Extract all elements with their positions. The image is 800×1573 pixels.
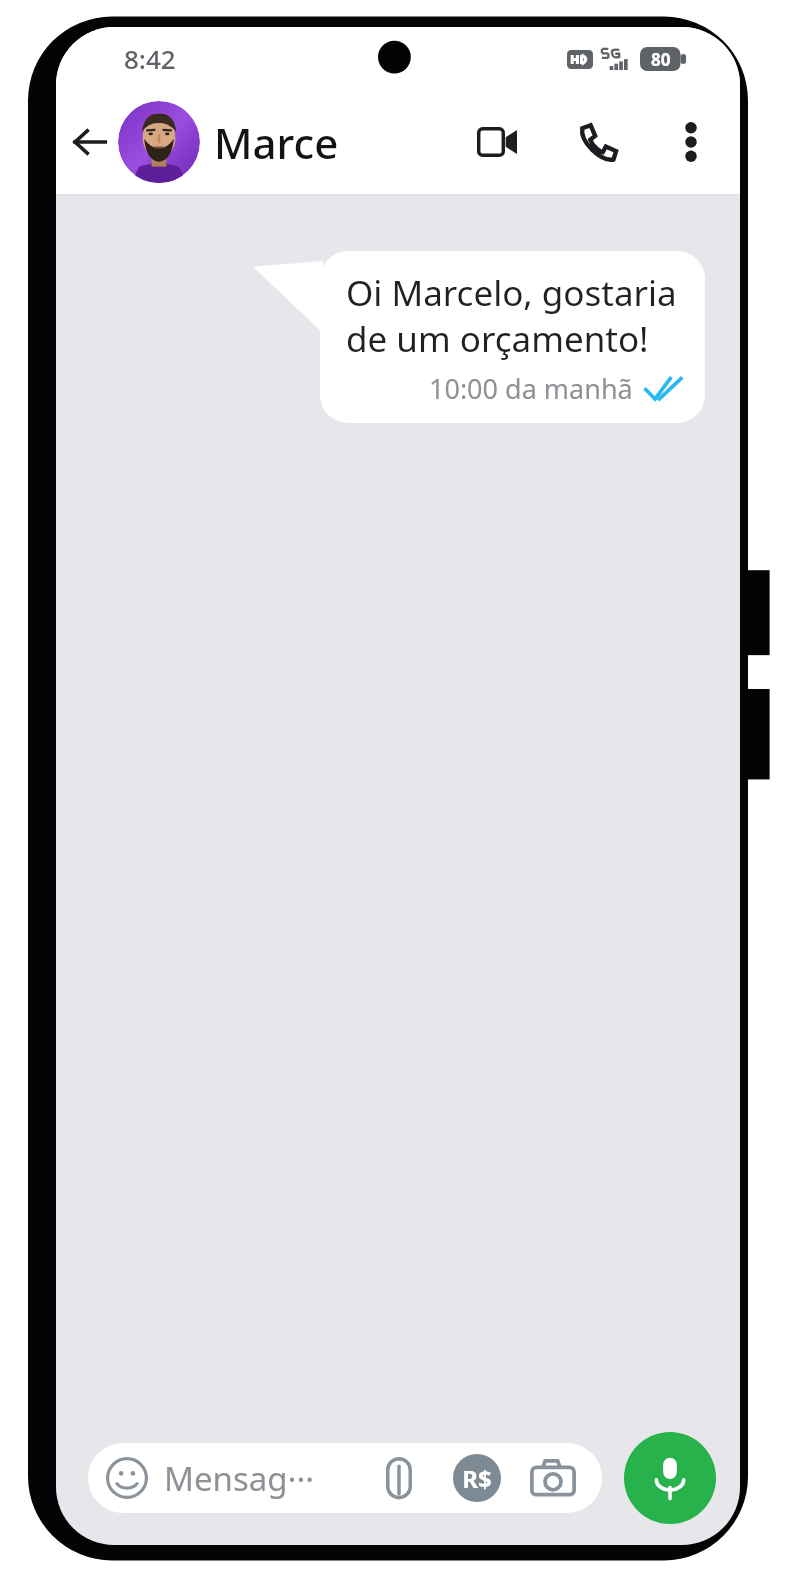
button[interactable]: Video call: [466, 111, 528, 173]
staticText: Mensag···: [164, 1456, 372, 1501]
button[interactable]: Camera: [526, 1451, 580, 1505]
staticText: Marcelo Inez: [214, 114, 340, 171]
button[interactable]: Call: [568, 111, 630, 173]
button[interactable]: Voice message: [624, 1432, 716, 1524]
staticText: Oi Marcelo, gostaria de um orçamento!: [346, 269, 681, 362]
button[interactable]: Send money: [450, 1451, 504, 1505]
button[interactable]: Mensag···: [88, 1443, 602, 1513]
staticText: 10:00 da manhã: [429, 370, 633, 407]
button[interactable]: Contact photo: [118, 101, 200, 183]
button[interactable]: Attach: [372, 1451, 426, 1505]
staticText: 80: [651, 48, 671, 71]
button[interactable]: More options: [660, 111, 722, 173]
staticText: 8:42: [124, 41, 176, 76]
staticText: R$: [462, 1462, 492, 1495]
button[interactable]: Back: [62, 114, 118, 170]
button[interactable]: Oi Marcelo, gostaria de um orçamento!: [320, 251, 705, 423]
